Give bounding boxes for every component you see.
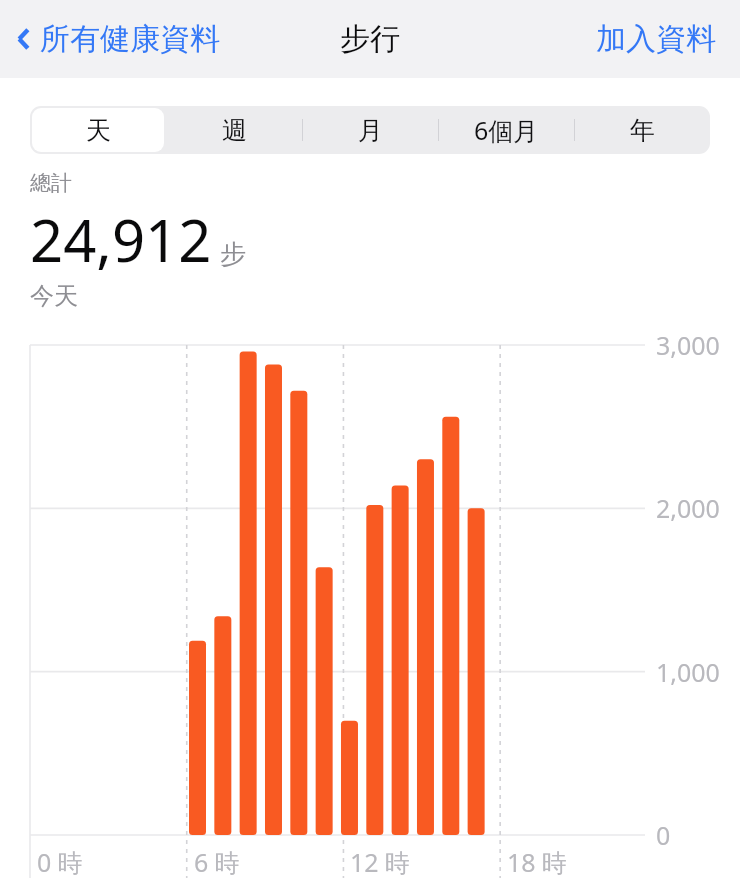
button[interactable]: 天 bbox=[30, 106, 166, 154]
button[interactable]: 週 bbox=[166, 106, 302, 154]
staticText: 步 bbox=[220, 238, 246, 271]
button[interactable]: 6個月 bbox=[438, 106, 574, 154]
staticText: 12 時 bbox=[350, 845, 411, 878]
staticText: 步行 bbox=[340, 20, 400, 58]
staticText: 0 時 bbox=[37, 845, 83, 878]
staticText: 24,912 bbox=[30, 200, 212, 279]
staticText: 所有健康資料 bbox=[40, 20, 220, 58]
button[interactable]: 月 bbox=[302, 106, 438, 154]
staticText: 加入資料 bbox=[596, 20, 716, 58]
staticText: 週 bbox=[222, 115, 247, 146]
staticText: 0 bbox=[656, 818, 671, 852]
other: Back bbox=[12, 22, 36, 56]
staticText: 總計 bbox=[30, 170, 72, 196]
staticText: 3,000 bbox=[656, 328, 720, 362]
staticText: 年 bbox=[630, 115, 655, 146]
staticText: 1,000 bbox=[656, 655, 720, 689]
button[interactable]: 年 bbox=[574, 106, 710, 154]
button[interactable]: Back bbox=[12, 20, 220, 58]
staticText: 6個月 bbox=[474, 113, 539, 147]
staticText: 今天 bbox=[30, 281, 78, 311]
staticText: 天 bbox=[86, 115, 111, 146]
staticText: 18 時 bbox=[507, 845, 568, 878]
staticText: 月 bbox=[358, 115, 383, 146]
button[interactable]: 加入資料 bbox=[596, 20, 716, 58]
staticText: 2,000 bbox=[656, 491, 720, 525]
staticText: 6 時 bbox=[194, 845, 240, 878]
